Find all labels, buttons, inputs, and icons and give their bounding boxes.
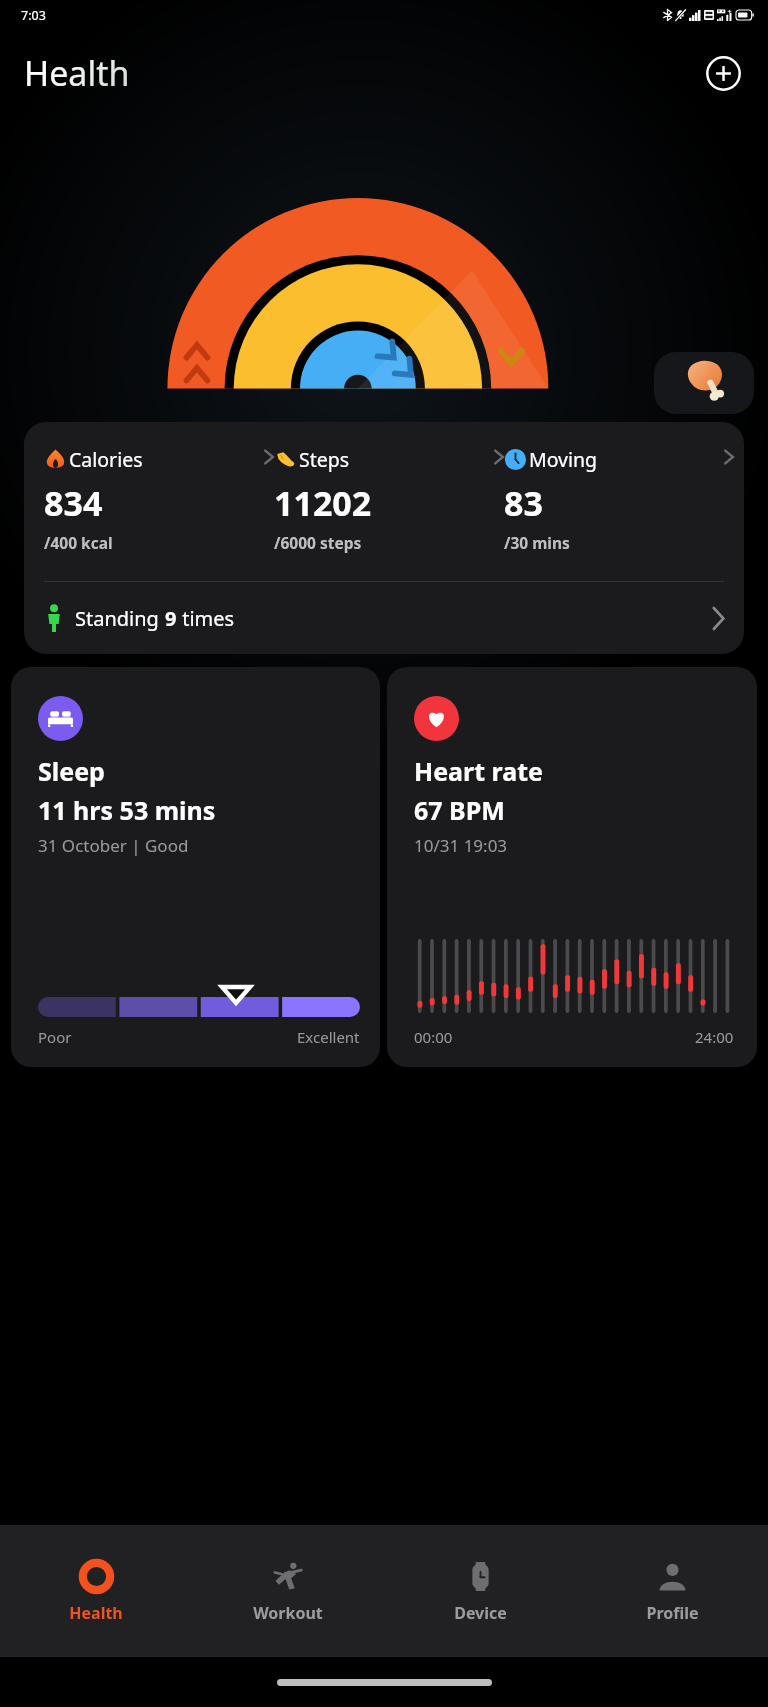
button[interactable]: Profile xyxy=(576,1525,768,1657)
staticText: 67 BPM xyxy=(414,793,505,827)
staticText: /6000 steps xyxy=(274,532,362,553)
staticText: 7:03 xyxy=(21,7,46,24)
staticText: Standing xyxy=(75,605,165,632)
staticText: Health xyxy=(24,50,130,96)
staticText: 9 xyxy=(165,605,177,632)
staticText: 83 xyxy=(504,480,543,526)
staticText: 11 hrs 53 mins xyxy=(38,793,216,827)
button[interactable]: Health xyxy=(0,1525,192,1657)
staticText: Workout xyxy=(253,1602,323,1624)
staticText: /400 kcal xyxy=(44,532,113,553)
button[interactable]: Add xyxy=(702,52,744,94)
staticText: 10/31 19:03 xyxy=(414,834,508,857)
button[interactable]: Calories xyxy=(44,446,263,553)
button[interactable]: Workout xyxy=(192,1525,384,1657)
staticText: Sleep xyxy=(38,754,105,788)
staticText: 834 xyxy=(44,480,103,526)
staticText: Health xyxy=(69,1602,123,1624)
staticText: /30 mins xyxy=(504,532,570,553)
staticText: Heart rate xyxy=(414,754,543,788)
button[interactable]: Heart rate xyxy=(387,667,757,1067)
staticText: Poor xyxy=(38,1027,72,1047)
staticText: Excellent xyxy=(297,1027,360,1047)
button[interactable]: Device xyxy=(384,1525,576,1657)
staticText: times xyxy=(177,605,235,632)
button[interactable]: Sleep xyxy=(11,667,380,1067)
staticText: Profile xyxy=(646,1602,699,1624)
staticText: Device xyxy=(454,1602,507,1624)
staticText: Moving xyxy=(529,446,598,473)
staticText: 00:00 xyxy=(414,1027,453,1047)
button[interactable]: x2 xyxy=(654,352,754,414)
staticText: Steps xyxy=(299,446,350,473)
staticText: Calories xyxy=(69,446,143,473)
button[interactable]: Standing xyxy=(24,582,744,654)
button[interactable]: Steps xyxy=(274,446,493,553)
staticText: 31 October | Good xyxy=(38,834,189,857)
staticText: 11202 xyxy=(274,480,372,526)
staticText: 24:00 xyxy=(695,1027,734,1047)
button[interactable]: Moving xyxy=(504,446,723,553)
